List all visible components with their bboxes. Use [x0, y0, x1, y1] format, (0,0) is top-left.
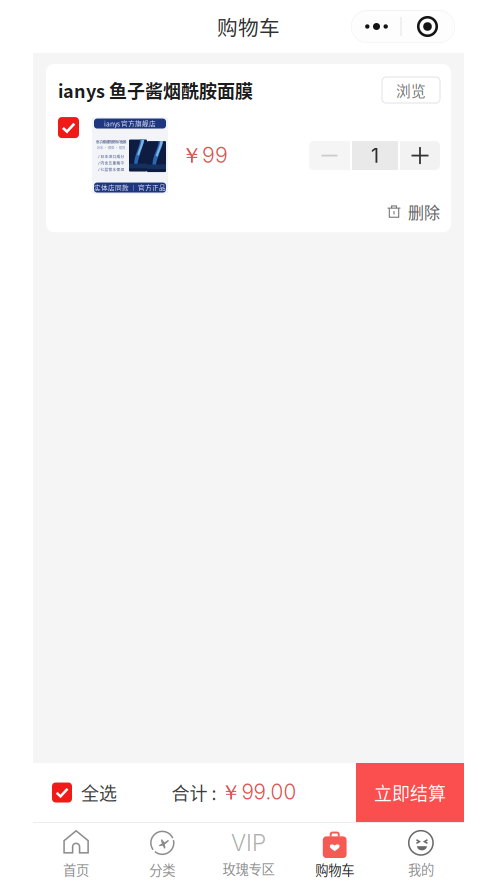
button[interactable]: 首页 — [33, 819, 119, 883]
staticText: ianys 官方旗舰店 — [104, 119, 156, 128]
button[interactable]: 浏览 — [382, 77, 440, 103]
button[interactable]: 购物车 — [292, 819, 378, 883]
staticText: ￥99.00 — [220, 779, 296, 806]
staticText: 购物车 — [315, 860, 354, 879]
staticText: 立即结算 — [374, 779, 446, 806]
staticText: 合计 : — [171, 779, 220, 806]
staticText: ✓ 七层锁水保湿 — [97, 167, 124, 172]
button[interactable]: More options — [351, 10, 455, 43]
staticText: 购物车 — [217, 11, 280, 41]
button[interactable]: 分类 — [119, 819, 205, 883]
staticText: 我的 — [408, 859, 434, 879]
button[interactable]: Increase quantity — [400, 141, 440, 170]
staticText: 全选 — [81, 779, 117, 806]
staticText: 1 — [371, 143, 379, 168]
button[interactable]: 立即结算 — [356, 763, 464, 822]
button[interactable]: 1 — [352, 141, 398, 170]
staticText: ✓ 内含五重精华 — [97, 160, 124, 165]
staticText: 补水 · 保湿 · 提亮 — [97, 145, 125, 150]
staticText: 玫瑰专区 — [222, 859, 274, 878]
staticText: 鱼子酱烟酰胺修护面膜 — [96, 139, 126, 144]
staticText: ianys 鱼子酱烟酰胺面膜 — [58, 77, 253, 103]
button[interactable]: VIP — [205, 820, 292, 883]
staticText: 首页 — [63, 860, 89, 879]
staticText: 分类 — [149, 860, 175, 879]
button[interactable]: 我的 — [378, 819, 464, 883]
staticText: ✓ 日本进口成分 — [97, 154, 124, 159]
staticText: 删除 — [408, 200, 440, 223]
staticText: 浏览 — [396, 79, 426, 101]
button[interactable]: Select item — [58, 117, 79, 138]
staticText: 实体店同款 ｜ 官方正品 — [94, 183, 166, 192]
button[interactable]: 删除 — [387, 197, 451, 226]
button[interactable]: Decrease quantity — [309, 141, 350, 170]
button[interactable]: 全选 — [33, 771, 117, 814]
staticText: VIP — [231, 829, 266, 856]
staticText: ￥99 — [181, 142, 228, 169]
